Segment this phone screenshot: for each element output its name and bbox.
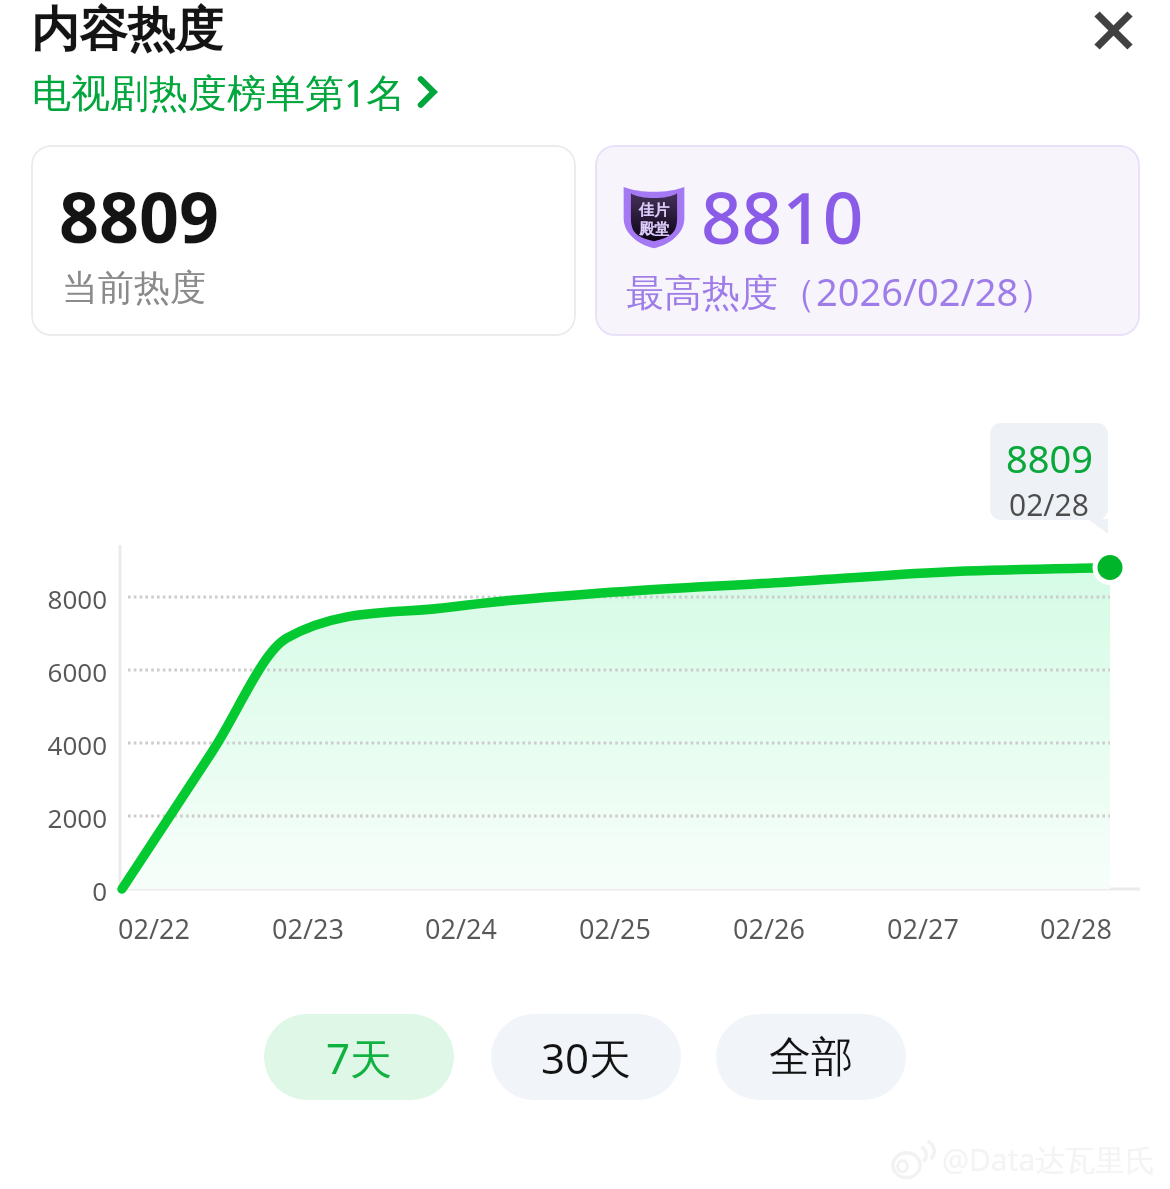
staticText: 4000: [47, 727, 107, 762]
staticText: 殿堂: [639, 220, 669, 239]
staticText: 02/22: [118, 910, 190, 947]
button[interactable]: Close: [1071, 0, 1155, 72]
staticText: 02/25: [579, 910, 651, 947]
staticText: 电视剧热度榜单第1名: [32, 65, 406, 118]
staticText: 6000: [47, 654, 107, 689]
staticText: 7天: [326, 1029, 393, 1086]
staticText: 02/23: [272, 910, 344, 947]
staticText: 佳片: [639, 201, 669, 220]
button[interactable]: 8809: [31, 145, 576, 336]
staticText: 8810: [701, 168, 864, 265]
staticText: 8809: [1006, 432, 1093, 484]
button[interactable]: 30天: [491, 1014, 681, 1100]
staticText: 8000: [47, 581, 107, 616]
button[interactable]: 电视剧热度榜单第1名: [24, 61, 447, 122]
button[interactable]: 佳片: [595, 145, 1140, 336]
staticText: 8809: [59, 168, 220, 263]
staticText: 全部: [769, 1031, 853, 1084]
staticText: 2000: [47, 800, 107, 835]
button[interactable]: 7天: [264, 1014, 454, 1100]
staticText: 02/28: [1040, 910, 1112, 947]
staticText: 30天: [541, 1029, 632, 1086]
staticText: 当前热度: [62, 265, 206, 310]
staticText: 最高热度（2026/02/28）: [626, 265, 1057, 317]
staticText: 0: [92, 873, 107, 908]
staticText: 02/26: [733, 910, 805, 947]
staticText: 02/28: [1009, 484, 1089, 525]
staticText: @Data达瓦里氏: [942, 1139, 1156, 1180]
button[interactable]: 全部: [716, 1014, 906, 1100]
staticText: 02/27: [887, 910, 959, 947]
staticText: 内容热度: [31, 0, 223, 60]
staticText: 02/24: [425, 910, 497, 947]
